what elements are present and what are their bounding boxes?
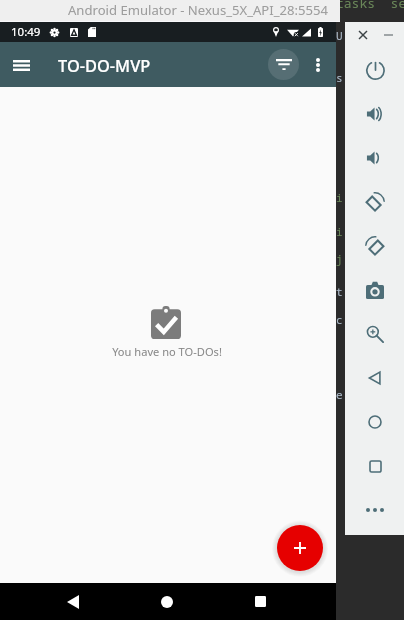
button[interactable]: Zoom [353, 312, 397, 356]
button[interactable]: Home [353, 400, 397, 444]
button[interactable]: Add task [277, 525, 323, 571]
staticText: s [336, 70, 343, 85]
staticText: j [336, 251, 343, 266]
staticText: c [336, 312, 343, 327]
button[interactable]: Close [351, 23, 375, 47]
staticText: i [336, 224, 343, 239]
button[interactable]: Power [353, 48, 397, 92]
staticText: Android Emulator - Nexus_5X_API_28:5554 [68, 1, 328, 19]
button[interactable]: Back [51, 583, 95, 620]
button[interactable]: Home [145, 583, 189, 620]
button[interactable]: Minimize [376, 23, 400, 47]
button[interactable]: Volume up [353, 92, 397, 136]
button[interactable]: Open navigation drawer [1, 45, 41, 85]
staticText: t [336, 284, 343, 299]
staticText: tasks set [336, 0, 404, 12]
button[interactable]: More [353, 488, 397, 532]
button[interactable]: Volume down [353, 136, 397, 180]
button[interactable]: Take screenshot [353, 268, 397, 312]
staticText: U [336, 28, 343, 43]
staticText: e [336, 387, 343, 402]
staticText: 10:49 [11, 24, 41, 40]
button[interactable]: More options [302, 49, 333, 80]
button[interactable]: Filter tasks [268, 49, 299, 80]
button[interactable]: Rotate left [353, 180, 397, 224]
button[interactable]: Recents [238, 583, 282, 620]
button[interactable]: Back [353, 356, 397, 400]
staticText: TO-DO-MVP [58, 54, 151, 76]
staticText: You have no TO-DOs! [112, 344, 222, 359]
button[interactable]: Overview [353, 444, 397, 488]
button[interactable]: Rotate right [353, 224, 397, 268]
staticText: i [336, 190, 343, 205]
